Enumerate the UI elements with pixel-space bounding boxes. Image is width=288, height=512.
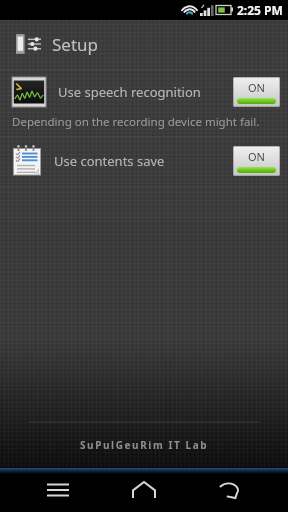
button[interactable]: Use speech recognition [0,70,288,135]
button[interactable]: Use contents save [12,137,280,185]
button[interactable]: Toggle on [233,146,280,176]
staticText: Depending on the recording device might … [12,114,260,130]
staticText: ON [248,149,265,164]
staticText: SuPulGeuRim IT Lab [80,438,209,452]
button[interactable]: Back [202,470,258,510]
staticText: Use speech recognition [58,83,201,101]
staticText: 2:25 PM [237,2,283,18]
staticText: Use contents save [54,152,165,170]
button[interactable]: Menu [30,470,86,510]
button[interactable]: Home [116,470,172,510]
button[interactable]: Toggle on [233,77,280,107]
staticText: Setup [52,33,99,56]
staticText: ON [248,80,265,95]
